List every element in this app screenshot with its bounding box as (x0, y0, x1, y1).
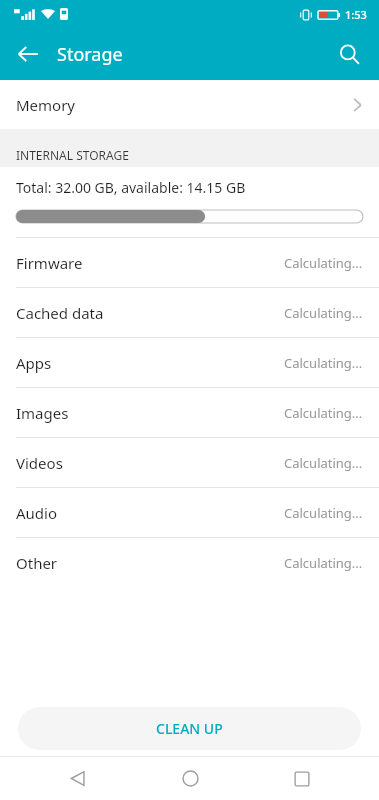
staticText: Audio (16, 503, 58, 523)
staticText: 1:53 (345, 7, 367, 22)
button[interactable]: Memory (0, 80, 379, 129)
button[interactable]: Cached data (0, 288, 379, 337)
staticText: Calculating... (284, 254, 363, 272)
staticText: Memory (16, 95, 76, 115)
button[interactable]: Recent apps (267, 757, 337, 800)
staticText: Calculating... (284, 504, 363, 522)
staticText: Calculating... (284, 554, 363, 572)
button[interactable]: Images (0, 388, 379, 437)
button[interactable]: Back (42, 757, 112, 800)
staticText: Videos (16, 453, 63, 473)
button[interactable]: Audio (0, 488, 379, 537)
staticText: Images (16, 403, 69, 423)
staticText: INTERNAL STORAGE (16, 147, 129, 163)
staticText: Calculating... (284, 354, 363, 372)
button[interactable]: Search (327, 32, 371, 76)
staticText: Total: 32.00 GB, available: 14.15 GB (16, 178, 246, 197)
staticText: Cached data (16, 303, 104, 323)
staticText: CLEAN UP (156, 719, 223, 738)
staticText: Calculating... (284, 454, 363, 472)
button[interactable]: Home (155, 757, 225, 800)
staticText: Storage (57, 42, 123, 67)
staticText: Firmware (16, 253, 83, 273)
staticText: Other (16, 553, 58, 573)
button[interactable]: Videos (0, 438, 379, 487)
staticText: Apps (16, 353, 52, 373)
button[interactable]: Apps (0, 338, 379, 387)
button[interactable]: Back (6, 32, 50, 76)
button[interactable]: Other (0, 538, 379, 587)
staticText: Calculating... (284, 404, 363, 422)
button[interactable]: Firmware (0, 238, 379, 287)
button[interactable]: CLEAN UP (18, 707, 361, 750)
staticText: Calculating... (284, 304, 363, 322)
